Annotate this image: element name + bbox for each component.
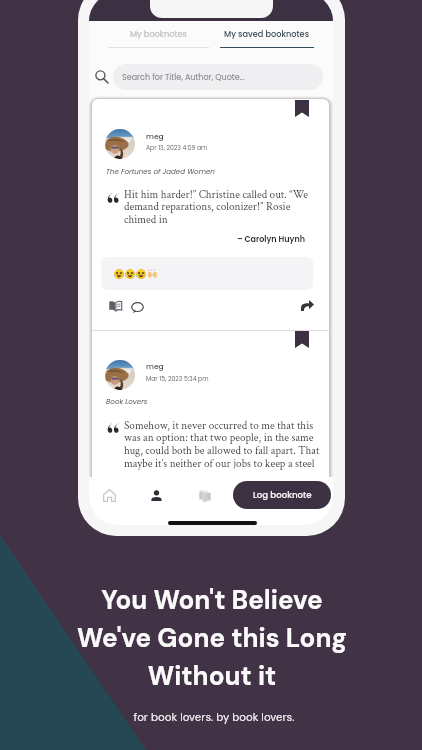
button[interactable]: Search for Title, Author, Quote... bbox=[113, 64, 323, 90]
button[interactable] bbox=[101, 257, 313, 290]
button[interactable]: Comment bbox=[131, 302, 144, 313]
staticText: My booknotes bbox=[130, 28, 187, 39]
staticText: for book lovers. by book lovers. bbox=[3, 710, 422, 725]
staticText: Mar 15, 2023 5:34 pm bbox=[146, 375, 209, 384]
staticText: The Fortunes of Jaded Women bbox=[106, 167, 215, 177]
button[interactable]: Profile bbox=[151, 490, 162, 501]
button[interactable]: Share bbox=[301, 300, 314, 311]
button[interactable]: Log booknote bbox=[233, 481, 331, 509]
staticText: meg bbox=[146, 131, 164, 142]
staticText: Book Lovers bbox=[106, 397, 148, 407]
staticText: You Won't Believe We've Gone this Long W… bbox=[1, 583, 422, 693]
staticText: Search for Title, Author, Quote... bbox=[122, 72, 245, 83]
button[interactable]: Bookmark bbox=[295, 100, 309, 117]
staticText: My saved booknotes bbox=[224, 28, 310, 39]
button[interactable]: Search bbox=[95, 70, 109, 84]
button[interactable]: Bookmark bbox=[295, 331, 309, 348]
button[interactable]: Read bbox=[109, 301, 122, 311]
staticText: Somehow, it never occurred to me that th… bbox=[124, 418, 320, 471]
staticText: Log booknote bbox=[253, 489, 312, 501]
staticText: Hit him harder!” Christine called out. “… bbox=[124, 187, 320, 227]
button[interactable] bbox=[105, 360, 135, 390]
button[interactable]: My saved booknotes bbox=[220, 28, 314, 48]
button[interactable]: Library bbox=[199, 489, 211, 502]
staticText: – Carolyn Huynh bbox=[92, 234, 305, 245]
button[interactable]: Home bbox=[103, 489, 116, 502]
button[interactable] bbox=[105, 129, 135, 159]
staticText: meg bbox=[146, 361, 164, 372]
button[interactable]: My booknotes bbox=[108, 28, 209, 48]
staticText: Apr 13, 2023 4:09 am bbox=[146, 144, 208, 153]
